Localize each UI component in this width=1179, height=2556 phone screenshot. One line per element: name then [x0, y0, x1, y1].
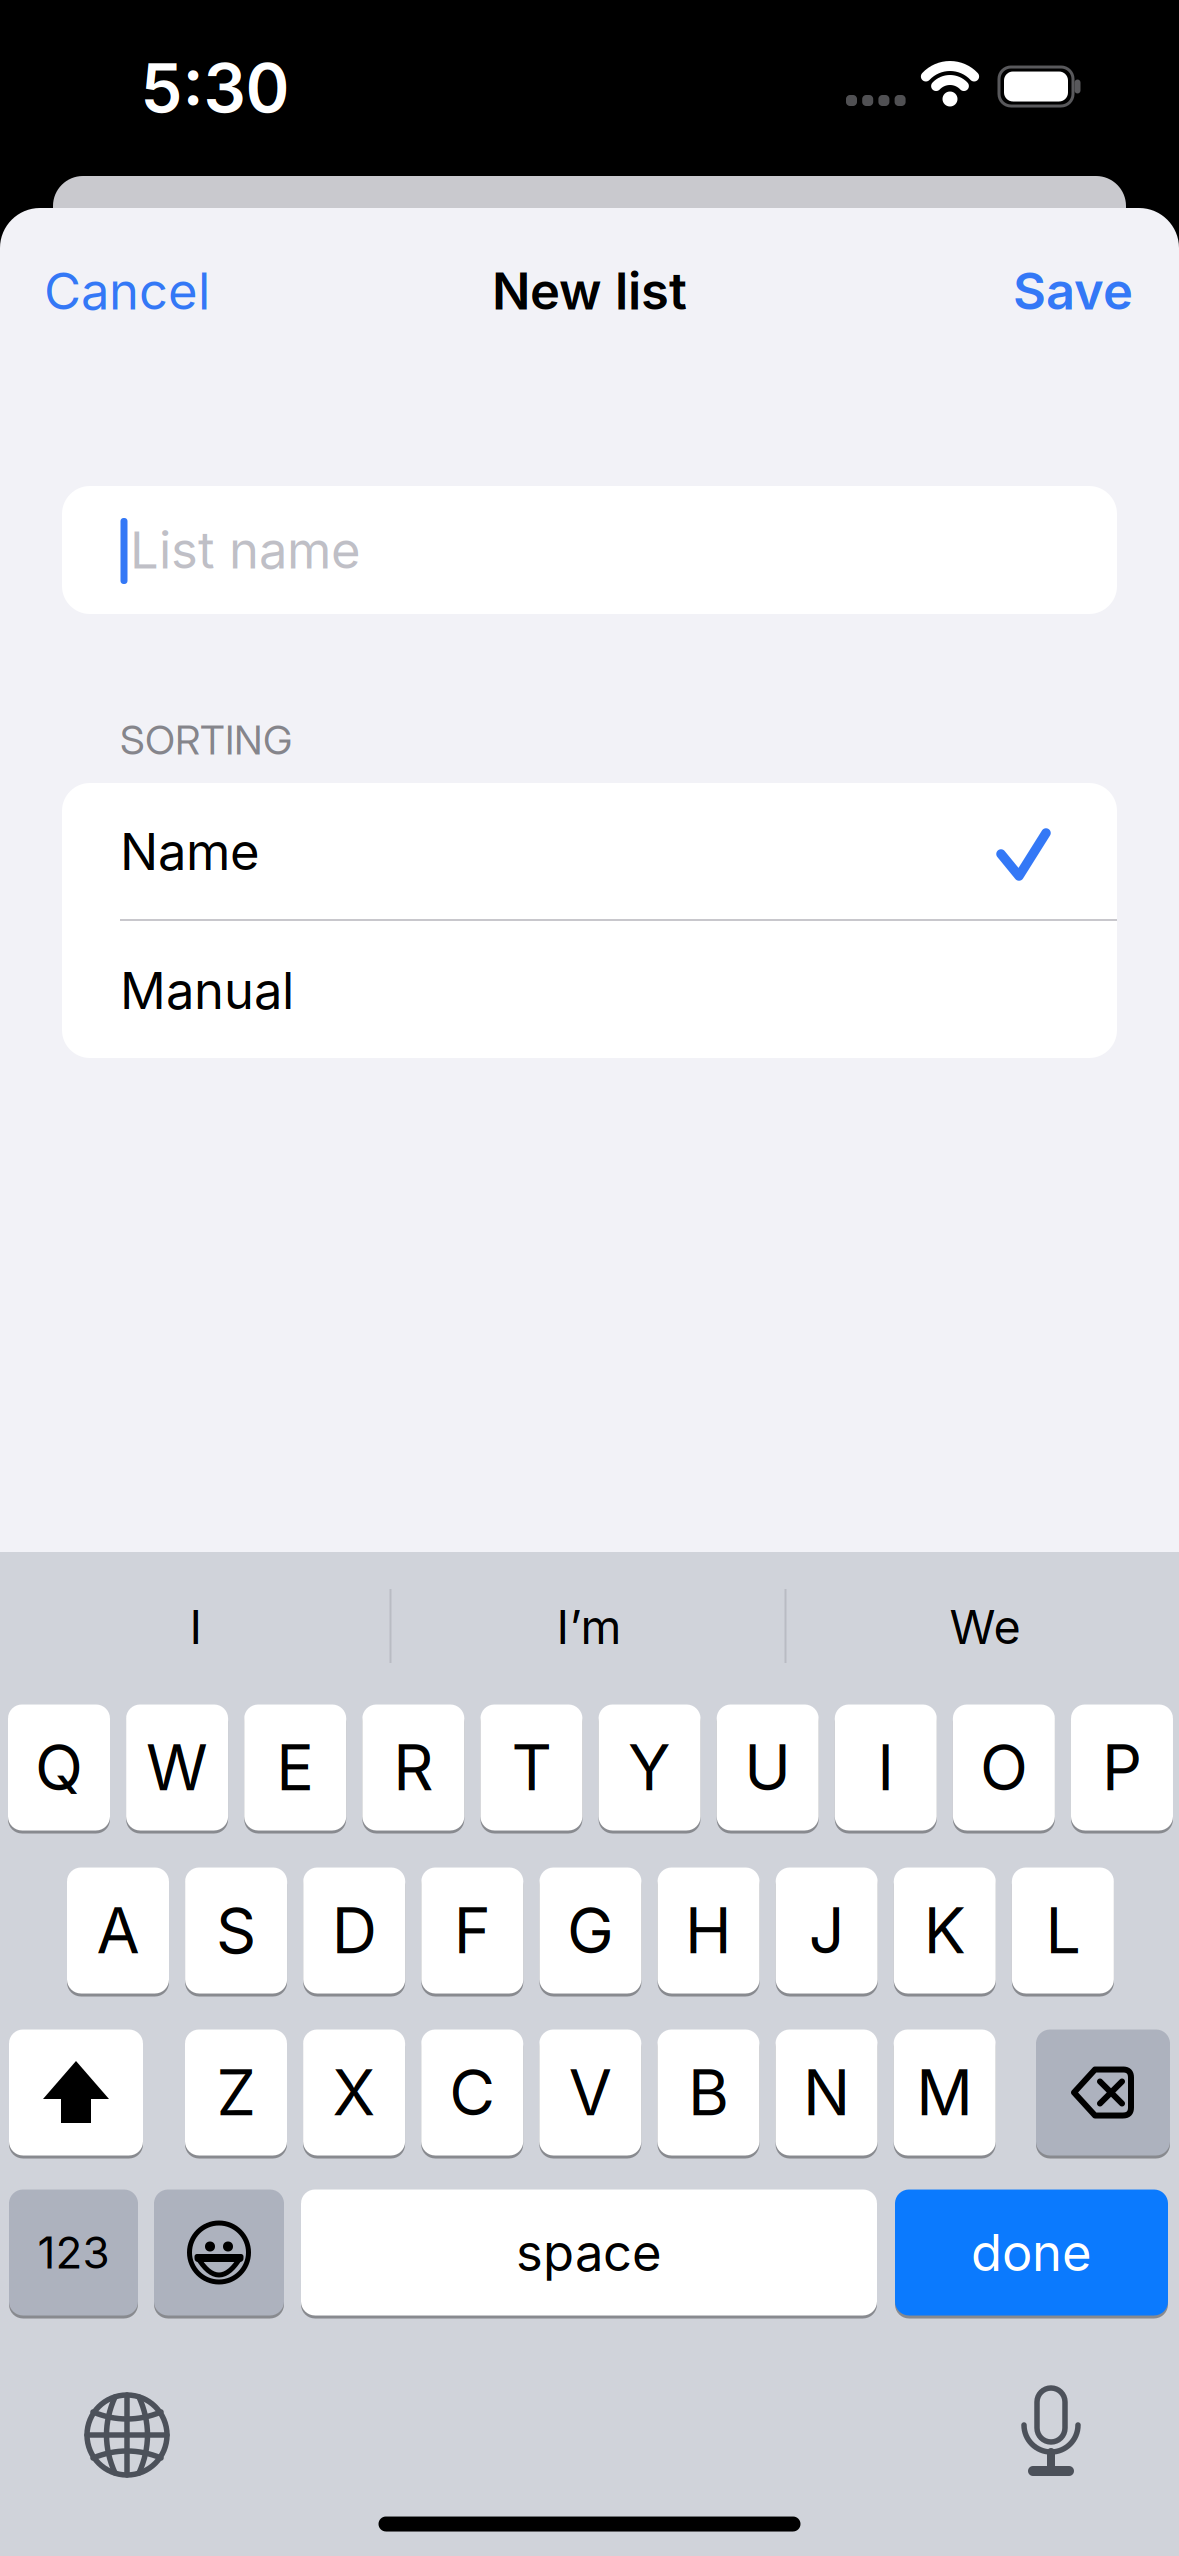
button[interactable]: B [657, 2029, 759, 2155]
staticText: List name [130, 520, 361, 580]
button[interactable]: W [126, 1704, 228, 1830]
button[interactable]: Q [8, 1704, 110, 1830]
staticText: Y [628, 1730, 671, 1804]
staticText: space [516, 2223, 662, 2282]
button[interactable]: G [539, 1867, 641, 1993]
staticText: Cancel [44, 261, 210, 321]
button[interactable]: F [421, 1867, 523, 1993]
staticText: Save [1013, 261, 1133, 321]
button[interactable]: I [6, 1572, 386, 1682]
staticText: Manual [120, 961, 294, 1020]
button[interactable]: U [717, 1704, 819, 1830]
button[interactable]: Emoji [154, 2189, 284, 2315]
staticText: C [449, 2055, 495, 2129]
staticText: D [332, 1893, 377, 1967]
staticText: N [803, 2055, 850, 2129]
staticText: R [393, 1730, 433, 1804]
button[interactable]: Delete [1036, 2029, 1170, 2155]
button[interactable]: R [362, 1704, 464, 1830]
button[interactable]: Name [62, 783, 1117, 920]
staticText: V [569, 2055, 612, 2129]
button[interactable]: Y [598, 1704, 700, 1830]
staticText: Z [216, 2055, 255, 2129]
staticText: J [809, 1893, 845, 1967]
staticText: H [685, 1893, 732, 1967]
button[interactable]: A [67, 1867, 169, 1993]
staticText: Name [120, 822, 260, 881]
button[interactable]: V [539, 2029, 641, 2155]
button[interactable]: L [1012, 1867, 1114, 1993]
staticText: G [567, 1893, 614, 1967]
button[interactable]: space [301, 2189, 877, 2315]
staticText: 123 [37, 2226, 109, 2278]
button[interactable]: Next keyboard [72, 2380, 182, 2490]
button[interactable]: done [895, 2189, 1168, 2315]
button[interactable]: I [835, 1704, 937, 1830]
staticText: I [877, 1730, 894, 1804]
staticText: W [146, 1730, 208, 1804]
button[interactable]: T [480, 1704, 582, 1830]
staticText: M [916, 2055, 973, 2129]
button[interactable]: List name [62, 486, 1117, 614]
staticText: B [688, 2055, 729, 2129]
staticText: K [924, 1893, 966, 1967]
button[interactable]: X [303, 2029, 405, 2155]
button[interactable]: D [303, 1867, 405, 1993]
button[interactable]: Save [1013, 246, 1133, 336]
staticText: Q [35, 1730, 83, 1804]
button[interactable]: 123 [9, 2189, 138, 2315]
staticText: P [1102, 1730, 1142, 1804]
staticText: We [949, 1599, 1020, 1655]
staticText: done [971, 2223, 1092, 2282]
staticText: A [96, 1893, 139, 1967]
button[interactable]: H [657, 1867, 759, 1993]
staticText: I [189, 1599, 202, 1655]
button[interactable]: N [775, 2029, 877, 2155]
staticText: F [454, 1893, 491, 1967]
staticText: 5:30 [140, 49, 289, 127]
button[interactable]: P [1071, 1704, 1173, 1830]
button[interactable]: Cancel [44, 246, 210, 336]
button[interactable]: S [185, 1867, 287, 1993]
staticText: U [744, 1730, 791, 1804]
button[interactable]: Z [185, 2029, 287, 2155]
staticText: T [511, 1730, 551, 1804]
button[interactable]: E [244, 1704, 346, 1830]
button[interactable]: Manual [62, 922, 1117, 1059]
staticText: New list [492, 261, 687, 321]
button[interactable]: O [953, 1704, 1055, 1830]
button[interactable]: C [421, 2029, 523, 2155]
button[interactable]: J [776, 1867, 878, 1993]
button[interactable]: M [894, 2029, 996, 2155]
button[interactable]: Shift [9, 2029, 143, 2155]
staticText: E [276, 1730, 314, 1804]
staticText: I’m [556, 1599, 621, 1655]
button[interactable]: K [894, 1867, 996, 1993]
staticText: L [1045, 1893, 1080, 1967]
staticText: X [333, 2055, 376, 2129]
staticText: SORTING [120, 716, 292, 764]
button[interactable]: I’m [399, 1572, 779, 1682]
staticText: S [216, 1893, 256, 1967]
button[interactable]: We [795, 1572, 1175, 1682]
button[interactable]: Dictation [996, 2377, 1106, 2487]
staticText: O [980, 1730, 1028, 1804]
